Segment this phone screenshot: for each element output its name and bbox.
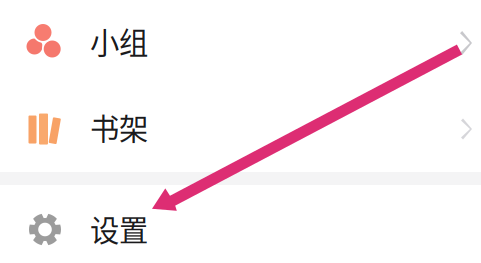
button[interactable]: 设置 (0, 185, 481, 263)
staticText: 小组 (90, 20, 148, 62)
staticText: 书架 (90, 106, 148, 148)
button[interactable]: 书架 (0, 86, 481, 172)
staticText: 设置 (90, 207, 148, 250)
button[interactable]: 小组 (0, 0, 481, 86)
